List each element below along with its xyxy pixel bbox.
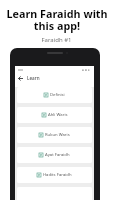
staticText: Learn Faraidh with this app! [6, 6, 108, 33]
staticText: Definisi [50, 92, 65, 98]
button[interactable]: Ahli Waris [17, 107, 92, 123]
staticText: Learn [27, 75, 40, 81]
staticText: Hadits Faraidh [43, 172, 72, 178]
staticText: Ahli Waris [48, 112, 68, 118]
button[interactable]: Back [17, 75, 24, 82]
button[interactable]: Ayat Faraidh [17, 147, 92, 163]
button[interactable]: Hadits Faraidh [17, 167, 92, 183]
staticText: Rukun Waris [45, 132, 70, 138]
staticText: Faraidh #1 [41, 36, 72, 44]
button[interactable]: Definisi [17, 87, 92, 103]
button[interactable]: Rukun Waris [17, 127, 92, 143]
staticText: Ayat Faraidh [45, 152, 70, 158]
